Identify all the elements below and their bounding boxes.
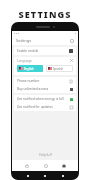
staticText: Spanish [53, 67, 64, 71]
button[interactable]: Get notified for updates [14, 103, 76, 111]
staticText: Get notified when energy is full [17, 97, 64, 101]
button[interactable]: Toggle [69, 49, 73, 53]
button[interactable]: English [17, 65, 43, 72]
button[interactable]: Settings [12, 35, 78, 45]
button[interactable]: Explore [41, 161, 50, 170]
button[interactable]: Buy unlimited access [14, 85, 76, 93]
staticText: English [24, 67, 34, 71]
staticText: Buy unlimited access [17, 87, 49, 91]
staticText: Phone number [17, 79, 40, 83]
button[interactable]: Enable mobile [14, 47, 76, 55]
staticText: Language [17, 59, 32, 63]
button[interactable]: Profile [59, 161, 68, 170]
staticText: Get notified for updates [17, 105, 53, 109]
button[interactable]: Spanish [46, 65, 73, 72]
button[interactable]: More options [69, 38, 74, 43]
staticText: Settings [16, 38, 32, 43]
button[interactable]: Get notified when energy is full [14, 95, 76, 103]
staticText: Helpful? [39, 152, 52, 157]
staticText: Enable mobile [17, 49, 39, 53]
button[interactable]: Language [14, 57, 76, 64]
button[interactable]: Phone number [14, 77, 76, 85]
staticText: SETTINGS [18, 8, 72, 20]
button[interactable]: Home [22, 161, 31, 170]
